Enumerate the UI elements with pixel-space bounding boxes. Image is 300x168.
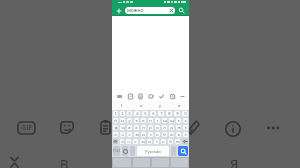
button[interactable]: Collapse xyxy=(10,156,19,168)
button[interactable]: Keyboard tool xyxy=(158,93,164,100)
button[interactable]: в xyxy=(170,101,189,110)
button[interactable]: я xyxy=(120,139,124,144)
button[interactable]: г xyxy=(155,118,160,123)
staticText: 0 xyxy=(184,111,187,116)
button[interactable]: й xyxy=(113,118,118,123)
staticText: д xyxy=(170,125,173,130)
button[interactable]: 0 xyxy=(182,111,188,116)
button[interactable]: т xyxy=(148,132,153,137)
button[interactable]: 4 xyxy=(134,111,140,116)
button[interactable]: Keyboard tool xyxy=(127,93,133,100)
button[interactable]: щ xyxy=(169,118,174,123)
staticText: с xyxy=(128,132,131,137)
button[interactable]: I xyxy=(112,101,132,110)
button[interactable]: ю xyxy=(175,139,180,144)
button[interactable]: Stickers xyxy=(60,121,74,134)
button[interactable]: с xyxy=(133,139,138,144)
button[interactable] xyxy=(113,139,118,144)
button[interactable]: 5 xyxy=(142,111,148,116)
button[interactable]: э xyxy=(183,125,188,130)
button[interactable]: с xyxy=(127,132,132,137)
button[interactable]: я xyxy=(113,132,118,137)
button[interactable]: п xyxy=(141,125,146,130)
button[interactable]: Keyboard tool xyxy=(169,93,175,100)
button[interactable]: и xyxy=(147,139,152,144)
button[interactable]: 1 xyxy=(113,111,118,116)
button[interactable]: More options xyxy=(265,124,281,132)
button[interactable]: 7 xyxy=(158,111,164,116)
staticText: ы xyxy=(121,125,125,130)
button[interactable]: з xyxy=(176,118,181,123)
button[interactable]: ч xyxy=(120,132,125,137)
button[interactable]: ?123 xyxy=(113,146,120,156)
button[interactable]: 9 xyxy=(174,111,180,116)
staticText: щ xyxy=(170,118,174,123)
button[interactable]: л xyxy=(162,125,167,130)
button[interactable] xyxy=(182,139,188,144)
button[interactable]: можно xyxy=(125,7,175,14)
button[interactable]: Keyboard tool xyxy=(137,93,143,100)
staticText: 6 xyxy=(152,111,155,116)
button[interactable]: э xyxy=(183,132,188,137)
staticText: т xyxy=(150,132,152,137)
button[interactable]: р xyxy=(148,125,153,130)
staticText: б xyxy=(163,132,166,137)
button[interactable]: ь xyxy=(155,132,160,137)
button[interactable]: Keyboard tool xyxy=(116,93,122,100)
button[interactable]: в xyxy=(127,125,132,130)
button[interactable]: а xyxy=(134,125,139,130)
button[interactable]: 6 xyxy=(150,111,156,116)
button[interactable]: ш xyxy=(162,118,167,123)
staticText: э xyxy=(184,125,187,130)
button[interactable]: 2 xyxy=(120,111,125,116)
button[interactable]: 3 xyxy=(127,111,132,116)
button[interactable]: х xyxy=(183,118,188,123)
button[interactable]: ы xyxy=(120,125,125,130)
staticText: а xyxy=(140,103,143,108)
staticText: м xyxy=(135,132,139,137)
button[interactable]: Keyboard tool xyxy=(148,93,154,100)
staticText: в xyxy=(128,125,131,130)
button[interactable]: о xyxy=(155,125,160,130)
staticText: GIF xyxy=(21,123,33,133)
button[interactable]: б xyxy=(162,132,167,137)
button[interactable]: Clear text xyxy=(169,8,174,13)
button[interactable]: Search xyxy=(178,7,185,14)
button[interactable]: Info xyxy=(225,121,241,137)
button[interactable]: м xyxy=(134,132,139,137)
button[interactable]: ц xyxy=(120,118,125,123)
button[interactable]: м xyxy=(140,139,145,144)
button[interactable]: у xyxy=(127,118,132,123)
staticText: Русский xyxy=(145,149,161,154)
button[interactable]: т xyxy=(154,139,159,144)
button[interactable]: Keyboard tool xyxy=(179,93,185,100)
button[interactable]: Draw xyxy=(187,120,200,135)
button[interactable]: к xyxy=(134,118,139,123)
button[interactable]: б xyxy=(168,139,173,144)
button[interactable]: Add xyxy=(115,7,123,15)
button[interactable]: ъ xyxy=(176,132,181,137)
button[interactable]: у xyxy=(151,101,170,110)
button[interactable]: Русский xyxy=(137,146,169,156)
button[interactable]: ю xyxy=(169,132,174,137)
button[interactable]: ь xyxy=(161,139,166,144)
button[interactable]: д xyxy=(169,125,174,130)
button[interactable]: Clipboard xyxy=(101,120,110,134)
button[interactable]: . xyxy=(171,146,176,156)
button[interactable]: а xyxy=(132,101,151,110)
button[interactable]: и xyxy=(141,132,146,137)
button[interactable]: 8 xyxy=(166,111,172,116)
button[interactable]: Search xyxy=(178,146,188,156)
button[interactable]: ч xyxy=(126,139,131,144)
button[interactable]: ж xyxy=(176,125,181,130)
button[interactable]: е xyxy=(141,118,146,123)
button[interactable] xyxy=(122,146,128,156)
button[interactable]: ф xyxy=(113,125,118,130)
button[interactable]: GIF xyxy=(18,122,35,134)
button[interactable]: н xyxy=(148,118,153,123)
